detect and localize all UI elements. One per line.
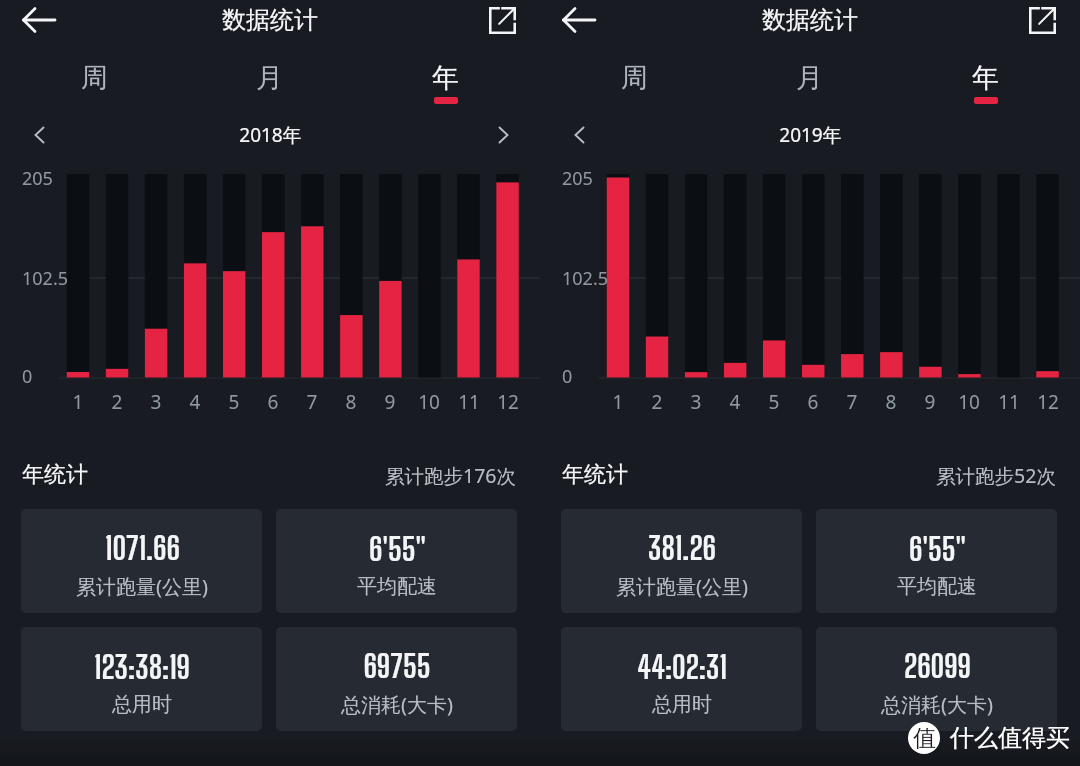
staticText: 10 xyxy=(409,389,449,415)
staticText: 1071.66 xyxy=(105,529,180,566)
staticText: 2019年 xyxy=(779,122,842,148)
staticText: 3 xyxy=(676,389,716,415)
staticText: 102.5 xyxy=(562,266,609,291)
staticText: 周 xyxy=(81,61,108,95)
staticText: 1 xyxy=(58,389,98,415)
staticText: 4 xyxy=(715,389,755,415)
staticText: 总用时 xyxy=(112,692,172,717)
button[interactable]: 月 xyxy=(765,61,853,115)
staticText: 6'55" xyxy=(369,530,426,567)
staticText: 102.5 xyxy=(22,266,69,291)
button[interactable]: 26099 xyxy=(816,627,1057,731)
button[interactable]: 123:38:19 xyxy=(21,627,262,731)
button[interactable]: 1071.66 xyxy=(21,509,262,613)
button[interactable]: 6'55" xyxy=(276,509,517,613)
staticText: 年统计 xyxy=(22,461,88,489)
staticText: 0 xyxy=(562,364,573,389)
staticText: 8 xyxy=(871,389,911,415)
staticText: 11 xyxy=(989,389,1029,415)
staticText: 205 xyxy=(22,166,53,191)
button[interactable]: Share xyxy=(1021,0,1063,40)
button[interactable]: 年 xyxy=(941,61,1029,115)
staticText: 11 xyxy=(449,389,489,415)
button[interactable]: Back xyxy=(554,0,604,40)
staticText: 381.26 xyxy=(648,529,716,566)
staticText: 年 xyxy=(972,61,999,95)
button[interactable]: 年 xyxy=(401,61,489,115)
staticText: 周 xyxy=(621,61,648,95)
staticText: 2018年 xyxy=(239,122,302,148)
button[interactable]: 周 xyxy=(50,61,138,115)
staticText: 5 xyxy=(754,389,794,415)
staticText: 0 xyxy=(22,364,33,389)
button[interactable]: 周 xyxy=(590,61,678,115)
staticText: 44:02:31 xyxy=(637,648,727,685)
staticText: 总消耗(大卡) xyxy=(341,691,453,718)
staticText: 69755 xyxy=(363,647,431,684)
staticText: 总消耗(大卡) xyxy=(881,691,993,718)
staticText: 12 xyxy=(1028,389,1068,415)
staticText: 1 xyxy=(598,389,638,415)
staticText: 4 xyxy=(175,389,215,415)
staticText: 5 xyxy=(214,389,254,415)
staticText: 平均配速 xyxy=(357,574,437,599)
staticText: 累计跑步176次 xyxy=(385,462,516,489)
staticText: 数据统计 xyxy=(222,5,318,35)
button[interactable]: Previous year xyxy=(560,117,598,153)
staticText: 6 xyxy=(253,389,293,415)
staticText: 月 xyxy=(796,61,823,95)
staticText: 年 xyxy=(432,61,459,95)
staticText: 2 xyxy=(637,389,677,415)
staticText: 年统计 xyxy=(562,461,628,489)
staticText: 累计跑量(公里) xyxy=(616,573,748,600)
staticText: 累计跑步52次 xyxy=(936,462,1056,489)
button[interactable]: 44:02:31 xyxy=(561,627,802,731)
staticText: 6'55" xyxy=(909,530,966,567)
button[interactable]: 381.26 xyxy=(561,509,802,613)
staticText: 7 xyxy=(832,389,872,415)
button[interactable]: Previous year xyxy=(20,117,58,153)
staticText: 12 xyxy=(488,389,528,415)
staticText: 7 xyxy=(292,389,332,415)
button[interactable]: 6'55" xyxy=(816,509,1057,613)
button[interactable]: 月 xyxy=(225,61,313,115)
staticText: 累计跑量(公里) xyxy=(76,573,208,600)
button[interactable]: 69755 xyxy=(276,627,517,731)
staticText: 平均配速 xyxy=(897,574,977,599)
staticText: 月 xyxy=(256,61,283,95)
staticText: 10 xyxy=(949,389,989,415)
button[interactable]: Back xyxy=(14,0,64,40)
staticText: 2 xyxy=(97,389,137,415)
staticText: 3 xyxy=(136,389,176,415)
button[interactable]: Share xyxy=(481,0,523,40)
staticText: 9 xyxy=(370,389,410,415)
staticText: 6 xyxy=(793,389,833,415)
staticText: 8 xyxy=(331,389,371,415)
staticText: 205 xyxy=(562,166,593,191)
staticText: 26099 xyxy=(904,647,971,684)
staticText: 9 xyxy=(910,389,950,415)
staticText: 什么值得买 xyxy=(950,723,1070,753)
staticText: 数据统计 xyxy=(762,5,858,35)
staticText: 值 xyxy=(913,724,936,753)
button[interactable]: Next year xyxy=(484,117,522,153)
staticText: 总用时 xyxy=(652,692,712,717)
staticText: 123:38:19 xyxy=(94,648,190,685)
